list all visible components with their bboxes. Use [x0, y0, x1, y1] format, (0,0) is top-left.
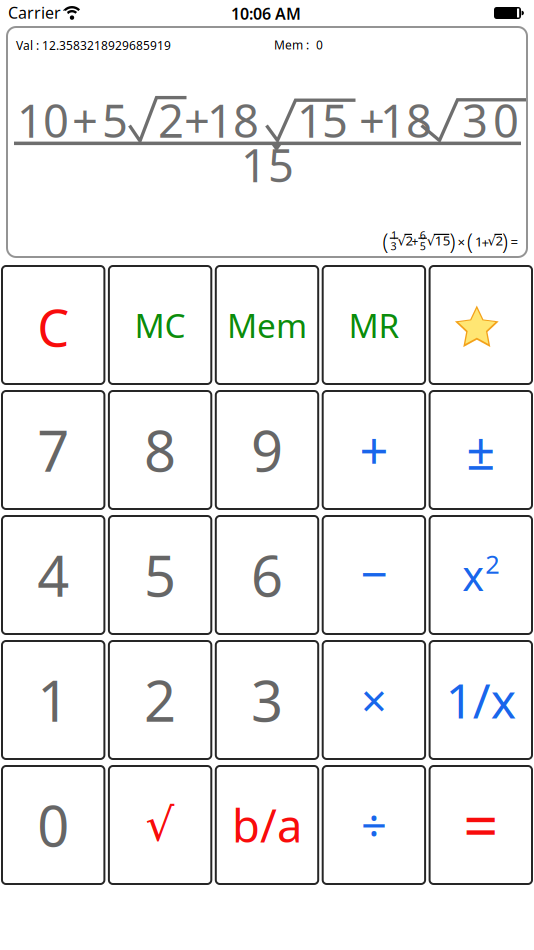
button[interactable]: 8 — [109, 391, 211, 509]
staticText: 2 — [485, 547, 499, 581]
staticText: 5 — [144, 538, 176, 612]
staticText: ÷ — [361, 795, 387, 855]
staticText: x — [462, 548, 484, 602]
staticText: 0 — [493, 90, 519, 150]
button[interactable]: 2 — [109, 641, 211, 759]
staticText: b/a — [232, 795, 302, 855]
button[interactable]: − — [323, 516, 425, 634]
button[interactable]: 3 — [216, 641, 318, 759]
button[interactable]: 5 — [109, 516, 211, 634]
button[interactable]: √ — [109, 766, 211, 884]
staticText: 1 — [475, 232, 483, 250]
button[interactable]: 1/x — [430, 641, 532, 759]
staticText: = — [510, 233, 518, 251]
staticText: √ — [146, 799, 175, 851]
staticText: 7 — [37, 413, 69, 487]
staticText: 5 — [420, 239, 426, 253]
staticText: 1 — [37, 663, 69, 737]
staticText: 0 — [37, 788, 69, 862]
staticText: + — [359, 90, 385, 150]
button[interactable]: 1 — [2, 641, 104, 759]
staticText: 6 — [251, 538, 283, 612]
button[interactable]: Mem — [216, 266, 318, 384]
button[interactable]: + — [323, 391, 425, 509]
staticText: − — [360, 541, 387, 605]
staticText: MR — [348, 303, 399, 347]
staticText: 18 — [207, 90, 259, 150]
staticText: 10:06 AM — [231, 3, 301, 24]
button[interactable]: 0 — [2, 766, 104, 884]
staticText: + — [184, 90, 210, 150]
staticText: 1 — [297, 90, 323, 150]
button[interactable]: MR — [323, 266, 425, 384]
staticText: 2 — [144, 663, 176, 737]
staticText: 6 — [420, 228, 426, 242]
button[interactable]: Favorites — [430, 266, 532, 384]
staticText: ( — [467, 227, 473, 255]
staticText: 18 — [380, 90, 432, 150]
staticText: √2 — [397, 231, 413, 249]
staticText: × — [457, 233, 465, 251]
staticText: 10 — [17, 90, 69, 150]
staticText: ) — [449, 227, 455, 255]
staticText: + — [411, 233, 418, 249]
staticText: 9 — [251, 413, 283, 487]
staticText: Mem : — [274, 37, 309, 53]
button[interactable]: b/a — [216, 766, 318, 884]
staticText: 8 — [144, 413, 176, 487]
staticText: Val : 12.3583218929685919 — [16, 37, 171, 53]
staticText: √15 — [427, 231, 451, 249]
button[interactable]: ÷ — [323, 766, 425, 884]
staticText: C — [37, 293, 69, 361]
staticText: 2 — [158, 90, 184, 150]
button[interactable]: 4 — [2, 516, 104, 634]
button[interactable]: MC — [109, 266, 211, 384]
staticText: = — [463, 784, 498, 866]
staticText: + — [72, 90, 98, 150]
staticText: 1 — [241, 134, 267, 195]
button[interactable]: 9 — [216, 391, 318, 509]
button[interactable]: 7 — [2, 391, 104, 509]
staticText: √2 — [487, 231, 503, 249]
staticText: 5 — [322, 90, 348, 150]
staticText: 5 — [102, 90, 128, 150]
staticText: ( — [382, 227, 388, 255]
button[interactable]: = — [430, 766, 532, 884]
staticText: 3 — [251, 663, 283, 737]
staticText: Carrier — [8, 2, 61, 23]
staticText: 3 — [462, 90, 488, 150]
staticText: Mem — [227, 303, 307, 347]
staticText: 4 — [37, 538, 69, 612]
button[interactable]: 6 — [216, 516, 318, 634]
staticText: + — [359, 416, 388, 484]
staticText: × — [361, 670, 387, 730]
staticText: ) — [502, 227, 508, 255]
staticText: 1 — [391, 228, 397, 242]
button[interactable]: C — [2, 266, 104, 384]
staticText: 3 — [390, 239, 396, 253]
button[interactable]: × — [323, 641, 425, 759]
staticText: MC — [135, 303, 186, 347]
staticText: 0 — [316, 37, 323, 53]
staticText: ± — [466, 416, 495, 484]
button[interactable]: ± — [430, 391, 532, 509]
staticText: + — [481, 233, 489, 251]
staticText: 5 — [268, 134, 294, 195]
button[interactable]: x squared — [430, 516, 532, 634]
staticText: 1/x — [446, 668, 516, 732]
